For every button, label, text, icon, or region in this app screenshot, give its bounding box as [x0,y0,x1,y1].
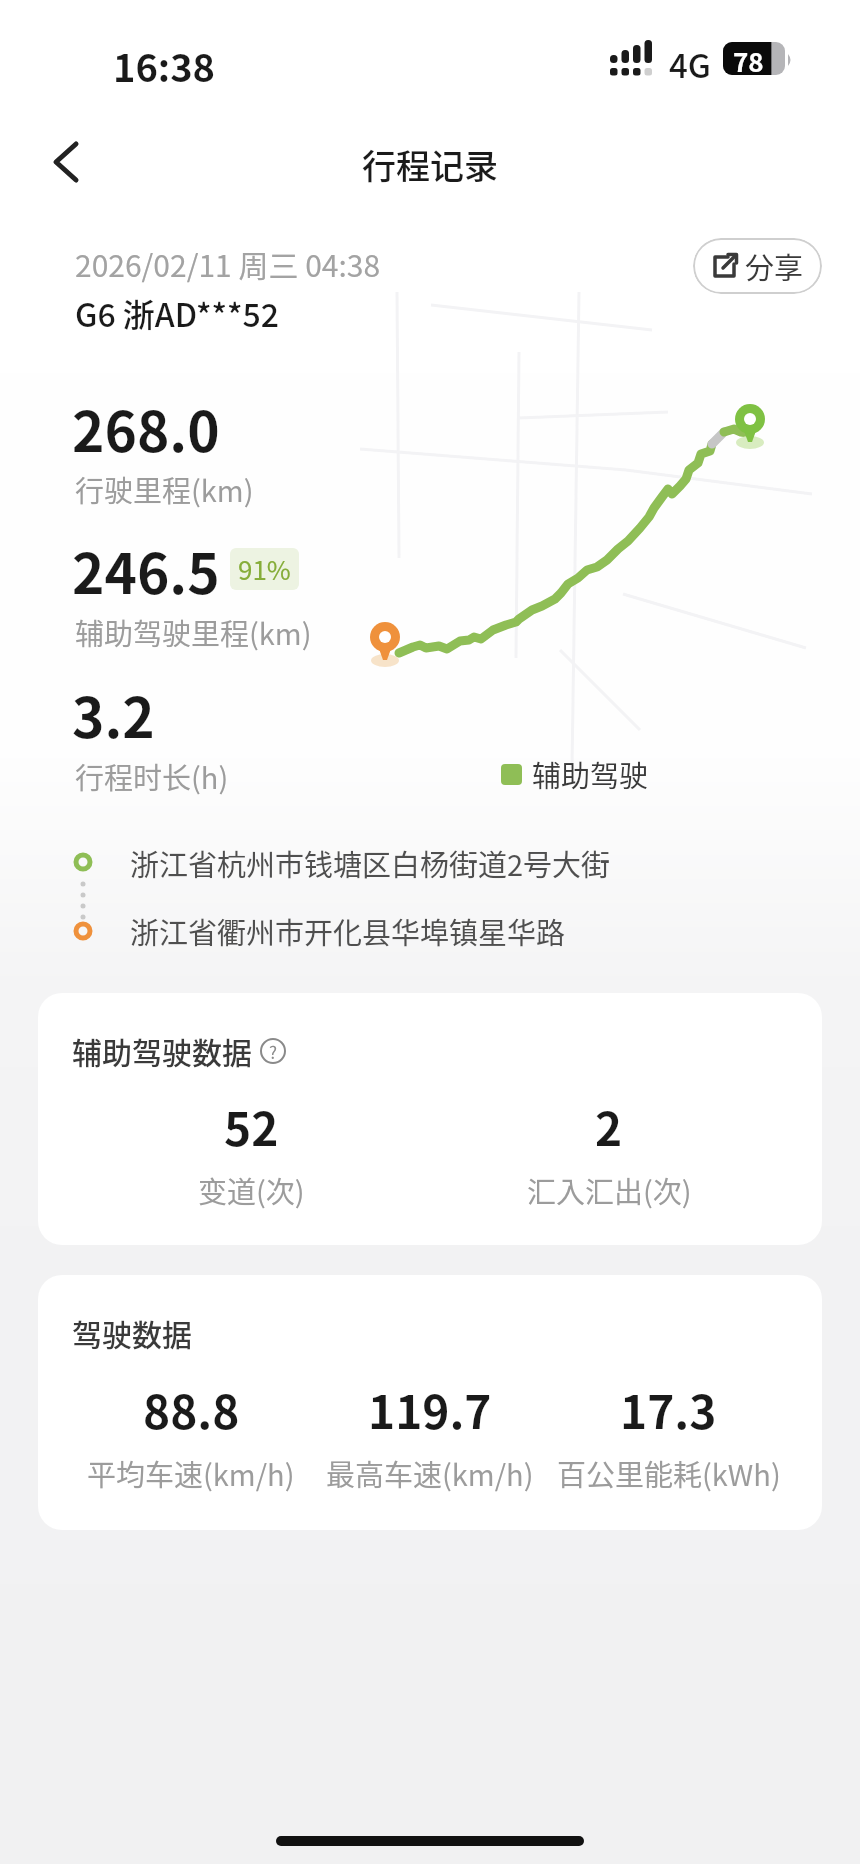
staticText: 最高车速(km/h) [326,1452,534,1494]
staticText: 268.0 [72,388,220,468]
staticText: 浙江省杭州市钱塘区白杨街道2号大街 [130,842,611,884]
staticText: 78 [733,42,764,75]
staticText: 16:38 [113,38,216,93]
staticText: 行驶里程(km) [75,468,254,510]
staticText: 浙江省衢州市开化县华埠镇星华路 [130,910,566,952]
staticText: 2026/02/11 周三 04:38 [75,242,381,285]
staticText: 行程时长(h) [75,755,229,797]
staticText: 3.2 [72,674,155,754]
staticText: 辅助驾驶数据 [72,1029,252,1072]
staticText: 246.5 [72,530,220,610]
staticText: 百公里能耗(kWh) [557,1452,781,1494]
staticText: 驾驶数据 [72,1311,192,1354]
staticText: 平均车速(km/h) [87,1452,295,1494]
button[interactable]: 分享 [693,238,822,294]
staticText: 辅助驾驶里程(km) [75,611,312,653]
staticText: 52 [224,1093,279,1160]
staticText: 汇入汇出(次) [527,1169,692,1211]
button[interactable]: ? [260,1038,286,1064]
staticText: ? [269,1039,278,1064]
staticText: 17.3 [620,1376,717,1443]
staticText: 行程记录 [362,140,498,186]
button[interactable] [50,142,84,182]
staticText: G6 浙AD***52 [75,290,279,336]
staticText: 119.7 [368,1376,492,1443]
staticText: 88.8 [143,1376,240,1443]
staticText: 91% [238,550,291,588]
staticText: 4G [669,40,711,88]
staticText: 2 [595,1093,623,1160]
staticText: 辅助驾驶 [532,753,649,795]
staticText: 变道(次) [198,1169,305,1211]
staticText: 分享 [745,245,804,287]
